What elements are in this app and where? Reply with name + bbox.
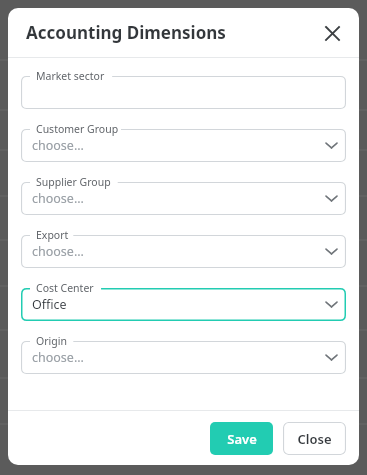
staticText: choose... bbox=[32, 190, 326, 207]
staticText: Export bbox=[36, 228, 69, 242]
staticText: Origin bbox=[36, 334, 67, 348]
button[interactable]: choose... bbox=[21, 175, 346, 215]
staticText: choose... bbox=[32, 243, 326, 260]
button[interactable]: Save bbox=[210, 422, 273, 455]
staticText: Supplier Group bbox=[36, 175, 111, 189]
staticText: Market sector bbox=[36, 69, 105, 83]
staticText: Cost Center bbox=[36, 281, 94, 295]
button[interactable]: Close bbox=[283, 422, 346, 455]
staticText: choose... bbox=[32, 137, 326, 154]
staticText: choose... bbox=[32, 349, 326, 366]
staticText: Customer Group bbox=[36, 122, 119, 136]
button[interactable]: Close dialog bbox=[317, 18, 347, 48]
button[interactable]: choose... bbox=[21, 228, 346, 268]
staticText: Office bbox=[32, 296, 326, 313]
staticText: Accounting Dimensions bbox=[26, 21, 226, 44]
staticText: Save bbox=[227, 430, 257, 448]
button[interactable]: Market sector bbox=[21, 69, 346, 109]
button[interactable]: choose... bbox=[21, 122, 346, 162]
button[interactable]: Office bbox=[21, 281, 346, 321]
staticText: Close bbox=[297, 430, 332, 448]
button[interactable]: choose... bbox=[21, 334, 346, 374]
